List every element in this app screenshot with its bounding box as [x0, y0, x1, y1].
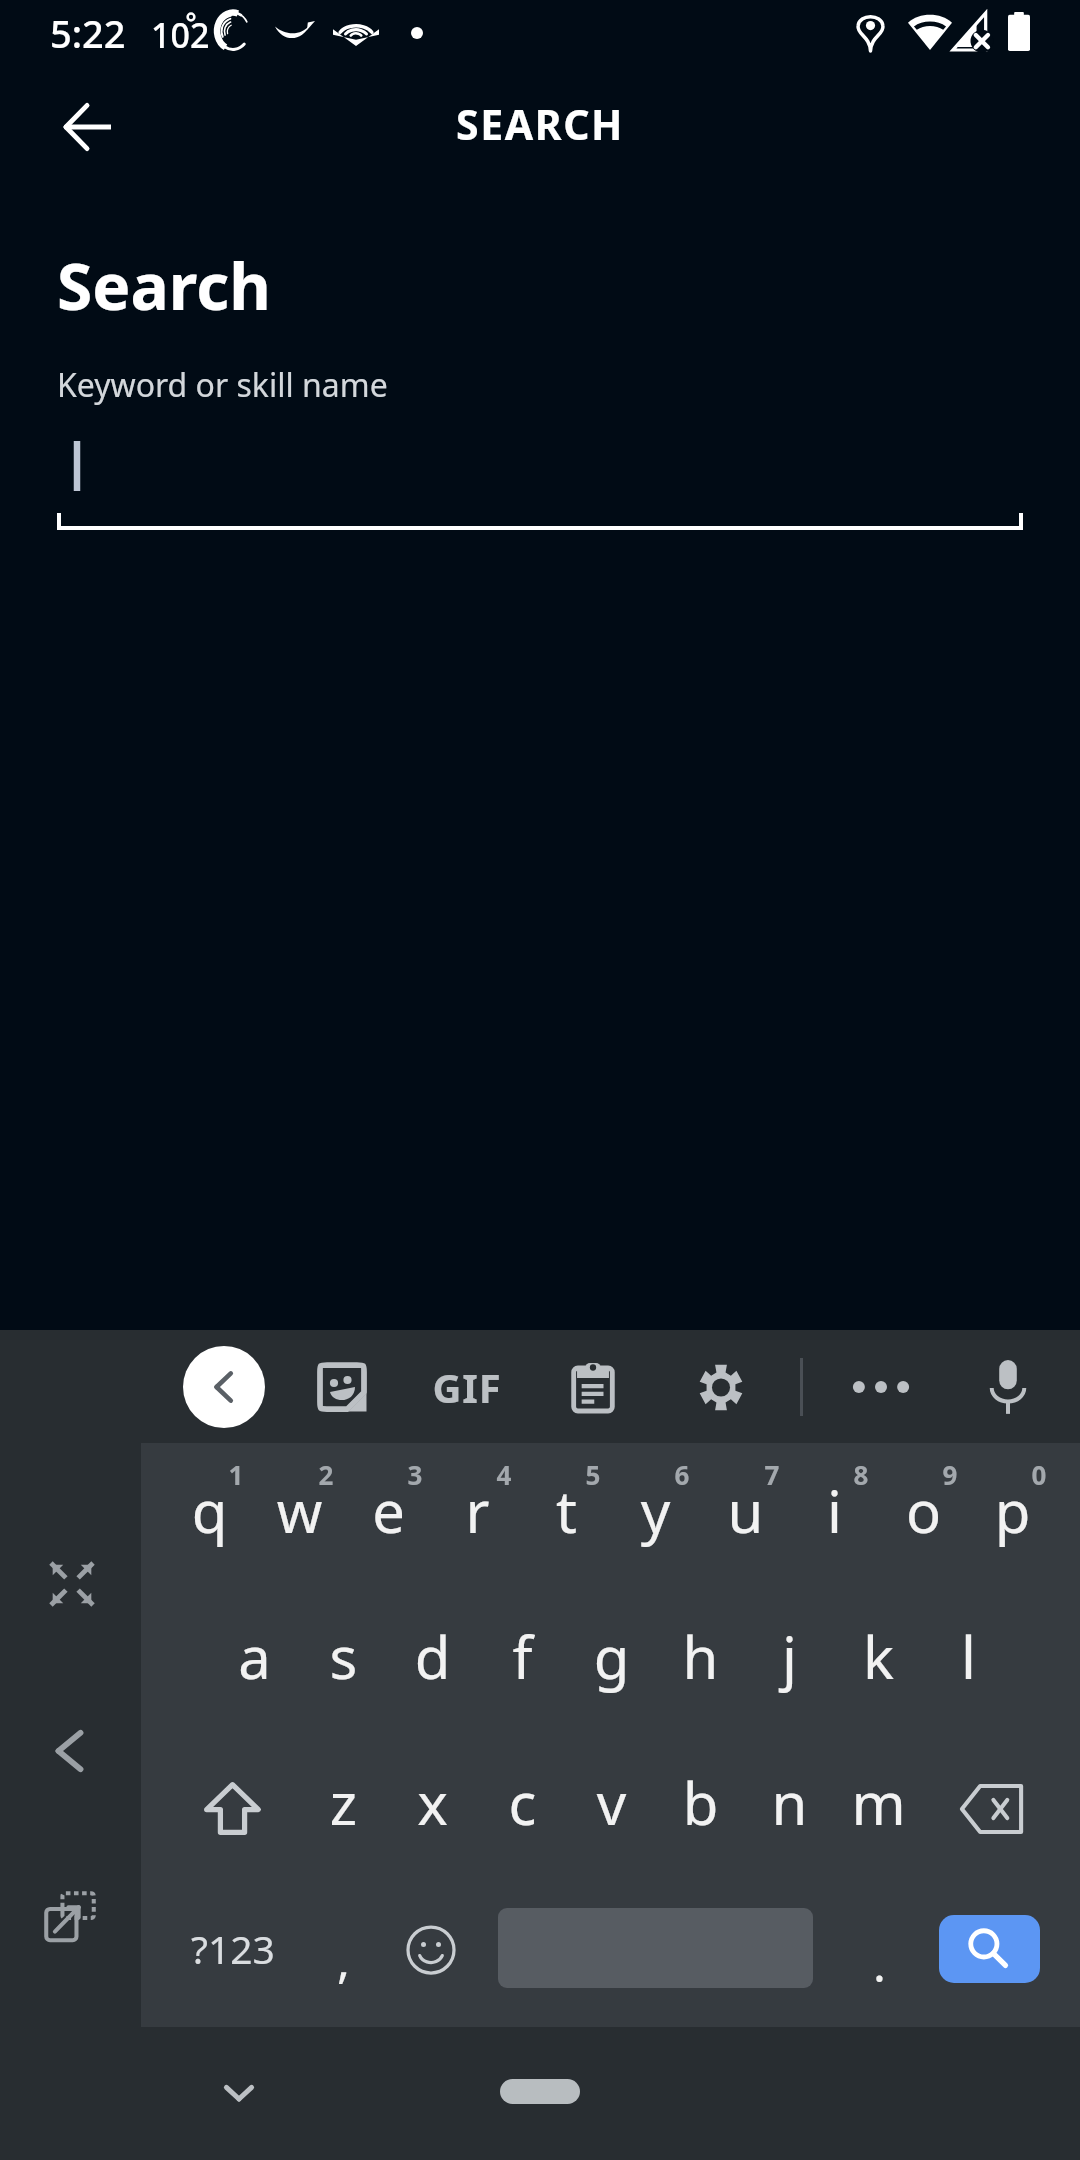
button[interactable]: z — [299, 1735, 388, 1881]
button[interactable]: Shift — [165, 1735, 299, 1881]
button[interactable]: s — [299, 1589, 388, 1735]
button[interactable]: . — [837, 1881, 917, 2027]
button[interactable]: 1 — [165, 1443, 254, 1589]
button[interactable]: v — [567, 1735, 656, 1881]
button[interactable]: Clipboard — [572, 1362, 614, 1412]
staticText: SEARCH — [0, 96, 1080, 152]
button[interactable]: h — [656, 1589, 745, 1735]
staticText: o — [879, 1471, 968, 1550]
button[interactable]: g — [567, 1589, 656, 1735]
staticText: s — [299, 1617, 388, 1696]
button[interactable]: d — [388, 1589, 477, 1735]
staticText: e — [344, 1471, 433, 1550]
staticText: , — [337, 1927, 350, 1992]
button[interactable]: Search — [909, 1881, 1056, 2027]
staticText: i — [790, 1471, 879, 1550]
button[interactable]: Backspace — [924, 1735, 1058, 1881]
button[interactable]: Stickers — [317, 1362, 367, 1412]
staticText: Search — [57, 242, 271, 329]
button[interactable]: Hide keyboard — [208, 2075, 270, 2111]
staticText: 3 — [395, 1457, 435, 1492]
staticText: n — [745, 1763, 834, 1842]
button[interactable]: Space — [468, 1881, 843, 2027]
button[interactable]: ?123 — [165, 1881, 299, 2027]
staticText: 4 — [484, 1457, 524, 1492]
staticText: m — [834, 1763, 923, 1842]
button[interactable]: , — [302, 1881, 392, 2027]
staticText: q — [165, 1471, 254, 1550]
button[interactable]: Resize keyboard — [49, 1561, 95, 1607]
staticText: y — [611, 1471, 700, 1550]
button[interactable]: 2 — [255, 1443, 344, 1589]
staticText: 9 — [930, 1457, 970, 1492]
button[interactable]: GIF — [422, 1360, 512, 1414]
staticText: GIF — [422, 1360, 512, 1414]
staticText: 102 — [151, 12, 210, 58]
staticText: j — [745, 1617, 834, 1696]
staticText: ?123 — [191, 1922, 275, 1975]
button[interactable]: 3 — [344, 1443, 433, 1589]
staticText: z — [299, 1763, 388, 1842]
button[interactable]: 0 — [968, 1443, 1057, 1589]
staticText: 5:22 — [50, 7, 126, 59]
button[interactable]: j — [745, 1589, 834, 1735]
staticText: t — [522, 1471, 611, 1550]
staticText: 8 — [841, 1457, 881, 1492]
staticText: Keyword or skill name — [57, 363, 388, 407]
button[interactable]: Floating keyboard — [43, 1890, 97, 1944]
staticText: f — [478, 1617, 567, 1696]
button[interactable]: m — [834, 1735, 923, 1881]
button[interactable]: k — [834, 1589, 923, 1735]
staticText: 6 — [662, 1457, 702, 1492]
staticText: u — [701, 1471, 790, 1550]
button[interactable]: 6 — [611, 1443, 700, 1589]
button[interactable]: Back — [44, 83, 132, 171]
button[interactable]: More options — [853, 1373, 909, 1401]
staticText: x — [388, 1763, 477, 1842]
staticText: 5 — [573, 1457, 613, 1492]
button[interactable]: 7 — [701, 1443, 790, 1589]
button[interactable]: f — [478, 1589, 567, 1735]
staticText: g — [567, 1617, 656, 1696]
button[interactable]: a — [210, 1589, 299, 1735]
button[interactable]: Move keyboard left — [46, 1727, 94, 1775]
button[interactable]: l — [924, 1589, 1013, 1735]
staticText: p — [968, 1471, 1057, 1550]
button[interactable]: Collapse toolbar — [183, 1346, 265, 1428]
staticText: a — [210, 1617, 299, 1696]
button[interactable]: 9 — [879, 1443, 968, 1589]
staticText: 7 — [752, 1457, 792, 1492]
button[interactable]: Emoji — [386, 1881, 476, 2027]
button[interactable]: 5 — [522, 1443, 611, 1589]
button[interactable]: x — [388, 1735, 477, 1881]
staticText: 1 — [216, 1457, 256, 1492]
button[interactable]: Keyword or skill name text field — [57, 434, 1023, 530]
staticText: . — [873, 1931, 886, 1996]
staticText: c — [478, 1763, 567, 1842]
button[interactable]: 8 — [790, 1443, 879, 1589]
staticText: l — [924, 1617, 1013, 1696]
staticText: h — [656, 1617, 745, 1696]
staticText: 2 — [306, 1457, 346, 1492]
staticText: k — [834, 1617, 923, 1696]
button[interactable]: Voice input — [986, 1359, 1030, 1415]
staticText: d — [388, 1617, 477, 1696]
button[interactable]: n — [745, 1735, 834, 1881]
staticText: v — [567, 1763, 656, 1842]
button[interactable]: c — [478, 1735, 567, 1881]
staticText: w — [255, 1471, 344, 1550]
staticText: r — [433, 1471, 522, 1550]
staticText: 0 — [1019, 1457, 1059, 1492]
button[interactable]: Settings — [699, 1364, 743, 1411]
button[interactable]: 4 — [433, 1443, 522, 1589]
staticText: b — [656, 1763, 745, 1842]
button[interactable]: b — [656, 1735, 745, 1881]
